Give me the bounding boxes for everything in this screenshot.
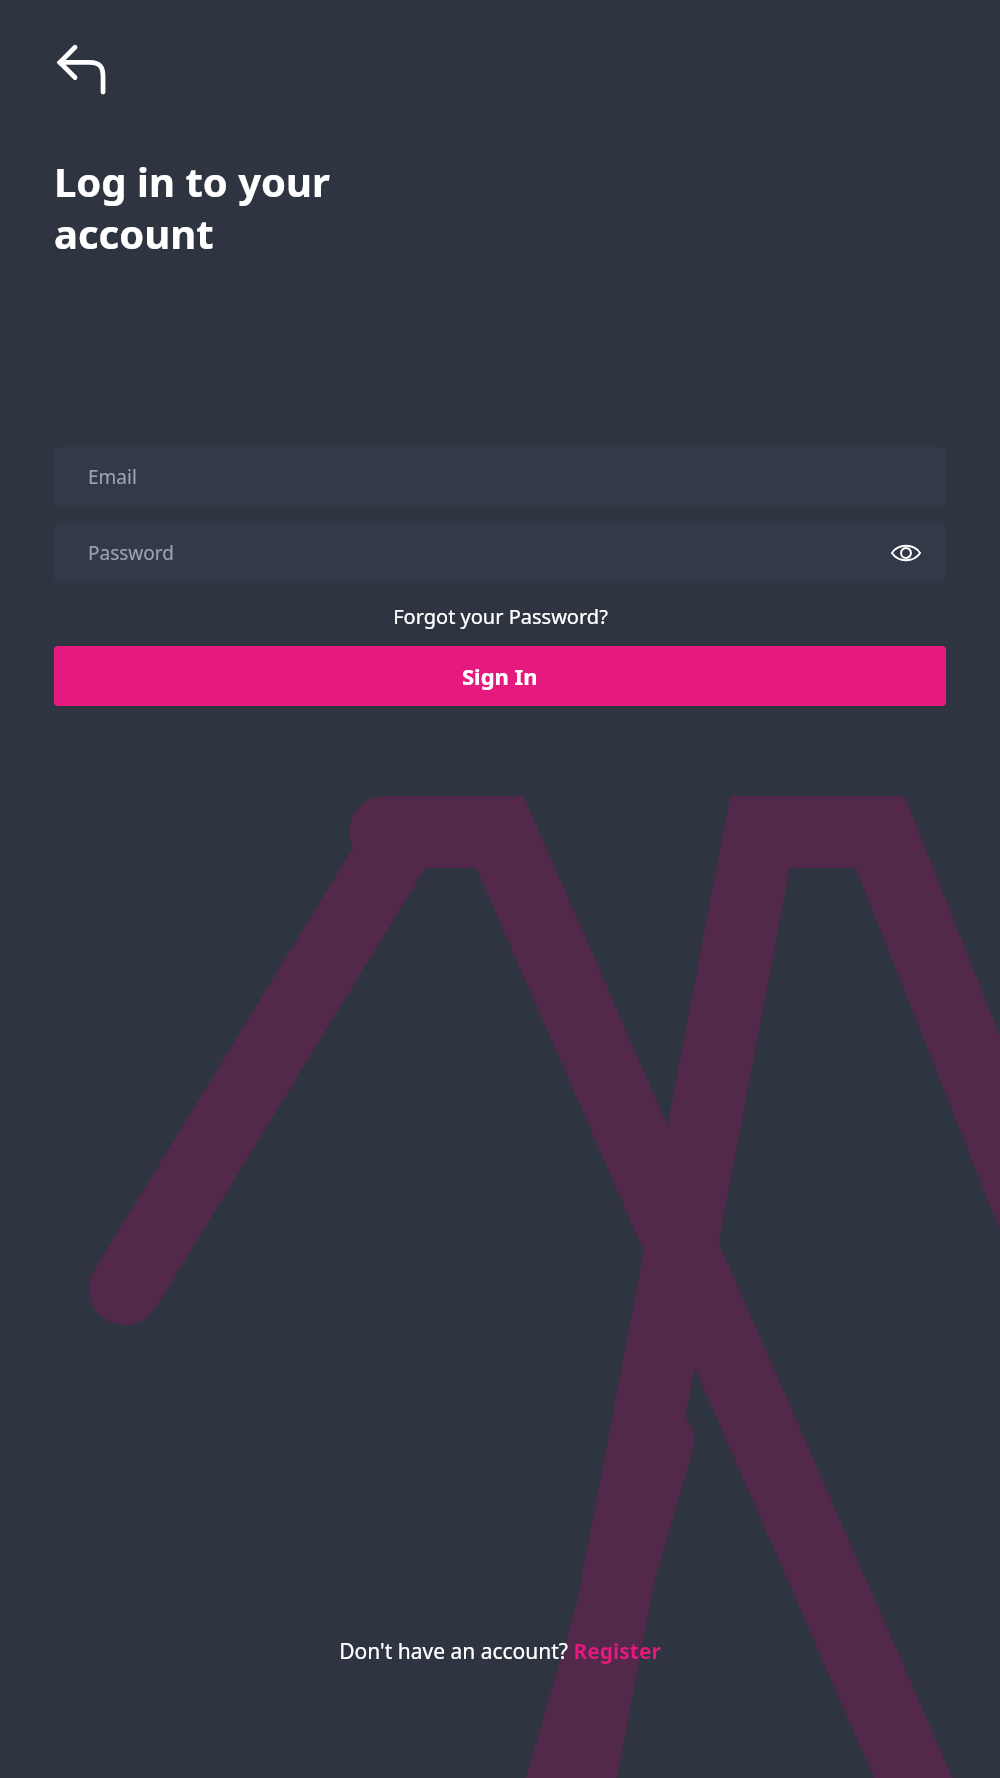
- button[interactable]: Show password: [886, 533, 926, 573]
- button[interactable]: Email: [54, 447, 946, 507]
- button[interactable]: Don't have an account? Register: [329, 1631, 671, 1672]
- staticText: Email: [88, 464, 137, 490]
- staticText: Password: [88, 540, 174, 566]
- button[interactable]: Back: [56, 40, 112, 96]
- staticText: Don't have an account? Register: [339, 1637, 661, 1666]
- staticText: Forgot your Password?: [393, 603, 608, 630]
- button[interactable]: Forgot your Password?: [383, 597, 618, 636]
- staticText: Sign In: [462, 661, 538, 691]
- button[interactable]: Password: [54, 523, 946, 583]
- staticText: Log in to your account: [54, 154, 330, 261]
- button[interactable]: Sign In: [54, 646, 946, 706]
